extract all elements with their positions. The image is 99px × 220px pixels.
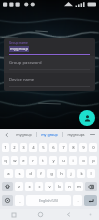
button[interactable]: v — [45, 182, 53, 191]
button[interactable]: Home — [27, 209, 54, 220]
button[interactable]: Expand toolbar — [2, 130, 11, 139]
staticText: r — [32, 158, 34, 164]
staticText: 4 — [32, 145, 35, 151]
staticText: k — [80, 171, 83, 177]
button[interactable]: Enter — [84, 195, 97, 206]
staticText: q — [4, 158, 7, 164]
staticText: 2 — [13, 145, 16, 151]
button[interactable]: p — [89, 156, 97, 165]
staticText: z — [18, 184, 20, 190]
staticText: my group — [41, 132, 58, 137]
staticText: y — [52, 158, 55, 164]
button[interactable]: k — [77, 169, 85, 178]
button[interactable]: my group — [37, 129, 62, 140]
staticText: b — [58, 184, 61, 190]
staticText: w — [13, 158, 17, 164]
staticText: l — [90, 171, 92, 177]
staticText: mygroups — [67, 132, 85, 137]
button[interactable]: Back — [54, 209, 82, 220]
button[interactable]: Group name — [4, 38, 95, 55]
staticText: 0 — [92, 145, 95, 151]
staticText: mygroup — [16, 132, 32, 137]
button[interactable]: z — [15, 182, 23, 191]
button[interactable]: Hide keyboard — [82, 209, 99, 220]
button[interactable]: y — [49, 156, 57, 165]
button[interactable]: b — [55, 182, 63, 191]
staticText: s — [18, 171, 21, 177]
button[interactable]: Group password — [4, 56, 95, 73]
button[interactable]: Create group — [79, 110, 95, 126]
button[interactable]: w — [11, 156, 18, 165]
staticText: 9 — [82, 145, 85, 151]
button[interactable]: 4 — [29, 143, 37, 152]
button[interactable]: 0 — [89, 143, 97, 152]
staticText: t — [42, 158, 44, 164]
button[interactable]: n — [65, 182, 73, 191]
button[interactable]: x — [25, 182, 33, 191]
staticText: j — [70, 171, 72, 177]
staticText: 6 — [52, 145, 55, 151]
button[interactable]: mygroup — [11, 129, 36, 140]
button[interactable]: e — [20, 156, 27, 165]
staticText: i — [72, 158, 74, 164]
button[interactable]: Backspace — [85, 182, 97, 191]
button[interactable]: u — [59, 156, 67, 165]
button[interactable]: l — [87, 169, 95, 178]
staticText: English (US) — [39, 198, 58, 203]
button[interactable]: 8 — [69, 143, 77, 152]
staticText: m — [77, 184, 81, 190]
staticText: u — [62, 158, 65, 164]
staticText: p — [92, 158, 95, 164]
staticText: f — [40, 171, 42, 177]
staticText: o — [82, 158, 85, 164]
button[interactable]: More suggestions — [88, 130, 97, 139]
button[interactable]: o — [79, 156, 87, 165]
button[interactable]: 3 — [20, 143, 27, 152]
staticText: mygroup — [10, 46, 28, 52]
button[interactable]: f — [37, 169, 45, 178]
button[interactable]: h — [57, 169, 65, 178]
button[interactable]: 7 — [59, 143, 67, 152]
button[interactable]: d — [26, 169, 35, 178]
button[interactable]: a — [4, 169, 13, 178]
staticText: . — [77, 198, 79, 204]
staticText: a — [7, 171, 10, 177]
button[interactable]: 1 — [2, 143, 9, 152]
button[interactable]: c — [35, 182, 43, 191]
button[interactable]: r — [29, 156, 37, 165]
button[interactable]: t — [39, 156, 47, 165]
button[interactable]: g — [47, 169, 55, 178]
button[interactable]: s — [15, 169, 24, 178]
button[interactable]: 6 — [49, 143, 57, 152]
button[interactable]: mygroups — [63, 129, 88, 140]
button[interactable]: j — [67, 169, 75, 178]
staticText: g — [50, 171, 53, 177]
button[interactable]: Device name — [4, 73, 95, 91]
staticText: Device name — [9, 77, 35, 83]
staticText: n — [68, 184, 71, 190]
button[interactable]: 2 — [11, 143, 18, 152]
button[interactable]: English (US) — [26, 195, 71, 206]
button[interactable]: i — [69, 156, 77, 165]
button[interactable]: 9 — [79, 143, 87, 152]
button[interactable]: 5 — [39, 143, 47, 152]
staticText: d — [29, 171, 32, 177]
button[interactable]: q — [2, 156, 9, 165]
button[interactable]: m — [75, 182, 83, 191]
staticText: 1 — [4, 145, 7, 151]
staticText: 5 — [42, 145, 45, 151]
staticText: 7 — [62, 145, 65, 151]
staticText: 3 — [22, 145, 25, 151]
staticText: Group name — [9, 41, 28, 45]
staticText: , — [19, 198, 21, 204]
staticText: Group password — [9, 60, 42, 66]
staticText: e — [22, 158, 25, 164]
staticText: 8 — [72, 145, 75, 151]
button[interactable]: Symbols — [2, 195, 13, 206]
staticText: c — [38, 184, 41, 190]
button[interactable]: , — [15, 195, 24, 206]
staticText: v — [48, 184, 51, 190]
button[interactable]: Recents — [0, 209, 27, 220]
button[interactable]: Shift — [2, 182, 13, 191]
